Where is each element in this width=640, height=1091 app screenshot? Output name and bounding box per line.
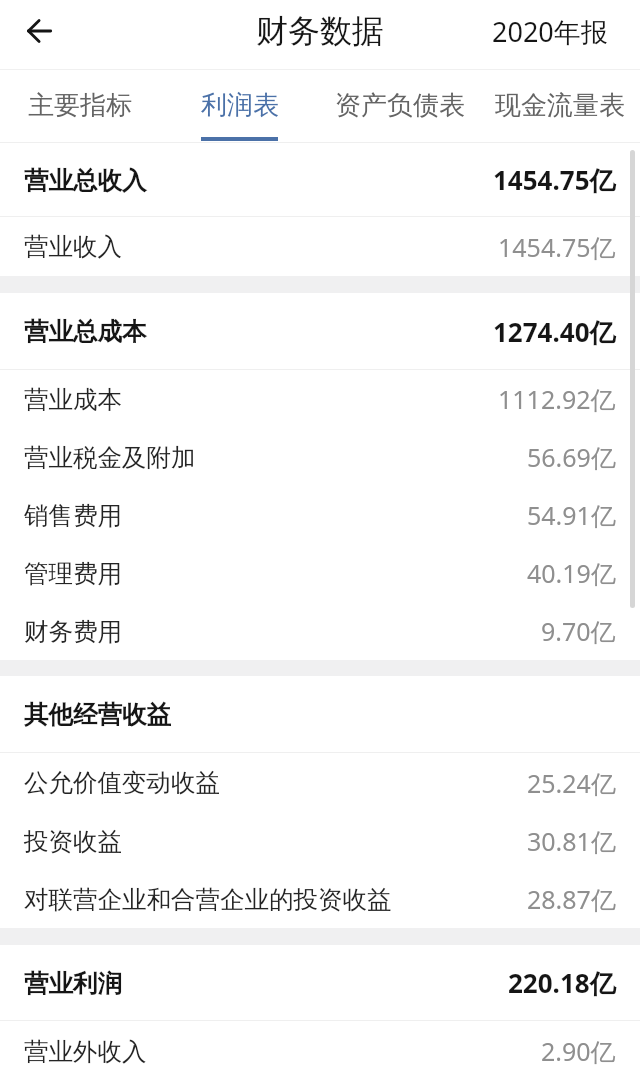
staticText: 2.90亿 (541, 1034, 616, 1068)
staticText: 销售费用 (24, 500, 122, 531)
staticText: 9.70亿 (541, 614, 616, 648)
button[interactable]: 对联营企业和合营企业的投资收益 (0, 870, 640, 928)
staticText: 25.24亿 (527, 766, 616, 800)
staticText: 其他经营收益 (24, 699, 171, 730)
staticText: 营业税金及附加 (24, 442, 196, 473)
staticText: 资产负债表 (335, 89, 465, 122)
staticText: 营业总成本 (24, 316, 147, 347)
button[interactable]: 公允价值变动收益 (0, 753, 640, 812)
staticText: 营业外收入 (24, 1036, 147, 1067)
staticText: 营业总收入 (24, 165, 147, 196)
button[interactable]: 资产负债表 (320, 70, 480, 142)
button[interactable]: 营业总收入 (0, 143, 640, 217)
button[interactable]: 管理费用 (0, 544, 640, 602)
staticText: 财务数据 (256, 11, 384, 51)
staticText: 1112.92亿 (498, 382, 616, 416)
button[interactable]: 财务费用 (0, 602, 640, 660)
staticText: 利润表 (201, 89, 279, 122)
staticText: 54.91亿 (527, 498, 616, 532)
button[interactable]: 销售费用 (0, 486, 640, 544)
button[interactable]: 营业利润 (0, 945, 640, 1021)
button[interactable]: 利润表 (160, 70, 320, 142)
button[interactable]: 营业税金及附加 (0, 428, 640, 486)
staticText: 现金流量表 (495, 89, 625, 122)
staticText: 主要指标 (28, 89, 132, 122)
staticText: 220.18亿 (508, 965, 616, 1001)
staticText: 1274.40亿 (493, 314, 616, 350)
staticText: 40.19亿 (527, 556, 616, 590)
staticText: 1454.75亿 (493, 162, 616, 198)
button[interactable]: 投资收益 (0, 812, 640, 870)
button[interactable]: 现金流量表 (480, 70, 640, 142)
staticText: 56.69亿 (527, 440, 616, 474)
button[interactable]: 其他经营收益 (0, 676, 640, 753)
staticText: 营业成本 (24, 384, 122, 415)
staticText: 管理费用 (24, 558, 122, 589)
staticText: 30.81亿 (527, 824, 616, 858)
staticText: 1454.75亿 (498, 230, 616, 264)
staticText: 财务费用 (24, 616, 122, 647)
staticText: 投资收益 (24, 826, 122, 857)
button[interactable]: Back (8, 5, 60, 57)
button[interactable]: 营业总成本 (0, 293, 640, 370)
staticText: 公允价值变动收益 (24, 767, 220, 798)
button[interactable]: 营业外收入 (0, 1021, 640, 1081)
staticText: 营业利润 (24, 968, 122, 999)
staticText: 28.87亿 (527, 882, 616, 916)
staticText: 2020年报 (492, 13, 608, 50)
button[interactable]: 营业收入 (0, 217, 640, 276)
staticText: 对联营企业和合营企业的投资收益 (24, 884, 392, 915)
staticText: 营业收入 (24, 231, 122, 262)
button[interactable]: 2020年报 (476, 5, 624, 58)
button[interactable]: 营业成本 (0, 370, 640, 428)
button[interactable]: 主要指标 (0, 70, 160, 142)
